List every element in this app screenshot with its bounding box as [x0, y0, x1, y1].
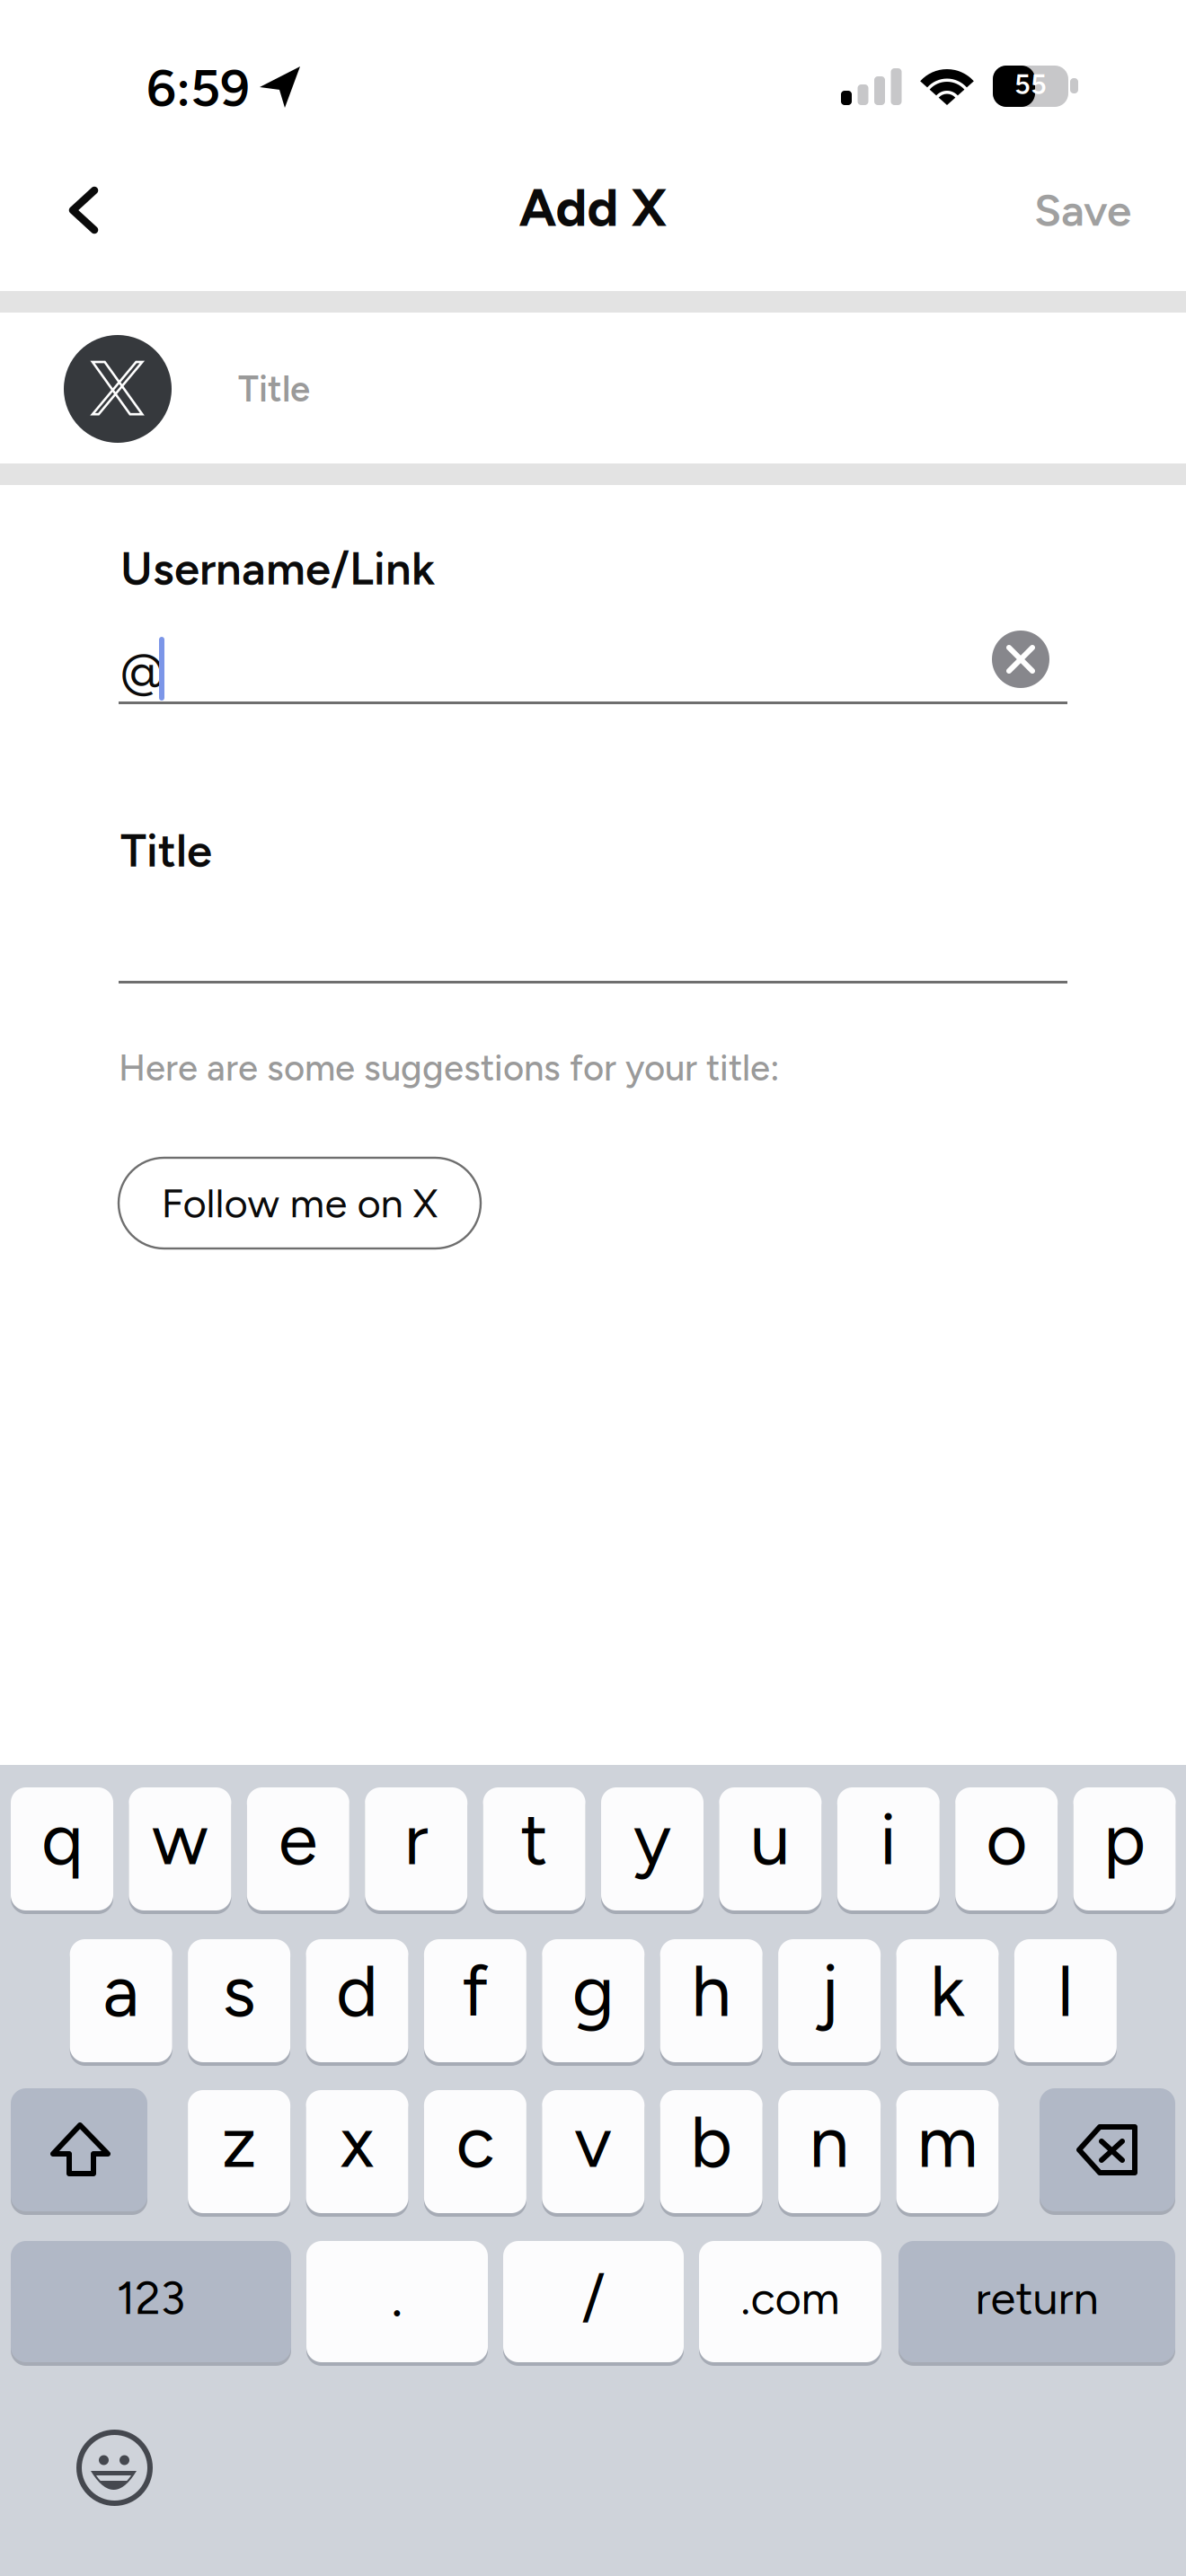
- button[interactable]: Delete: [1040, 2088, 1175, 2215]
- button[interactable]: m: [896, 2088, 999, 2215]
- button[interactable]: j: [778, 1937, 881, 2064]
- staticText: p: [1103, 1796, 1146, 1882]
- staticText: f: [462, 1948, 489, 2034]
- staticText: .com: [741, 2271, 840, 2325]
- staticText: Save: [1034, 184, 1131, 237]
- staticText: k: [930, 1948, 965, 2034]
- button[interactable]: .: [306, 2239, 488, 2364]
- staticText: w: [152, 1796, 208, 1882]
- staticText: e: [278, 1796, 318, 1882]
- button[interactable]: Shift: [11, 2088, 147, 2215]
- button[interactable]: e: [247, 1786, 349, 1912]
- staticText: 6:59: [146, 57, 250, 119]
- button[interactable]: y: [601, 1786, 704, 1912]
- button[interactable]: o: [955, 1786, 1058, 1912]
- staticText: h: [691, 1948, 732, 2034]
- button[interactable]: t: [483, 1786, 585, 1912]
- staticText: 55: [1014, 68, 1047, 101]
- staticText: return: [975, 2271, 1098, 2325]
- staticText: 123: [116, 2271, 186, 2325]
- staticText: Add X: [519, 176, 667, 239]
- button[interactable]: w: [129, 1786, 231, 1912]
- button[interactable]: a: [70, 1937, 172, 2064]
- staticText: r: [404, 1796, 428, 1882]
- staticText: .: [391, 2263, 403, 2329]
- staticText: Here are some suggestions for your title…: [119, 1046, 780, 1090]
- button[interactable]: k: [896, 1937, 999, 2064]
- button[interactable]: Back: [21, 156, 128, 264]
- button[interactable]: b: [660, 2088, 763, 2215]
- staticText: o: [986, 1796, 1027, 1882]
- staticText: c: [456, 2099, 495, 2185]
- button[interactable]: return: [898, 2239, 1175, 2364]
- button[interactable]: Title: [0, 313, 1186, 463]
- button[interactable]: l: [1014, 1937, 1117, 2064]
- staticText: b: [690, 2099, 732, 2185]
- button[interactable]: .com: [699, 2239, 881, 2364]
- button[interactable]: q: [11, 1786, 113, 1912]
- staticText: i: [880, 1796, 897, 1882]
- button[interactable]: 123: [11, 2239, 291, 2364]
- button[interactable]: Title: [119, 898, 1067, 984]
- staticText: Username/Link: [120, 541, 435, 596]
- button[interactable]: c: [424, 2088, 526, 2215]
- staticText: y: [633, 1796, 671, 1882]
- staticText: q: [41, 1796, 83, 1882]
- staticText: u: [750, 1796, 791, 1882]
- button[interactable]: v: [542, 2088, 644, 2215]
- button[interactable]: Save: [925, 161, 1131, 260]
- button[interactable]: s: [188, 1937, 290, 2064]
- staticText: Title: [120, 823, 212, 878]
- staticText: @: [120, 644, 165, 698]
- staticText: /: [582, 2260, 605, 2332]
- button[interactable]: i: [837, 1786, 940, 1912]
- button[interactable]: /: [503, 2239, 684, 2364]
- staticText: a: [103, 1948, 139, 2034]
- staticText: z: [222, 2099, 257, 2185]
- button[interactable]: n: [778, 2088, 881, 2215]
- button[interactable]: Emoji keyboard: [78, 2431, 168, 2521]
- button[interactable]: f: [424, 1937, 526, 2064]
- staticText: m: [917, 2099, 978, 2185]
- staticText: n: [809, 2099, 850, 2185]
- button[interactable]: x: [306, 2088, 408, 2215]
- staticText: v: [574, 2099, 612, 2185]
- staticText: s: [222, 1948, 256, 2034]
- button[interactable]: Username or link: [119, 631, 1067, 706]
- button[interactable]: Clear text: [992, 631, 1049, 688]
- staticText: j: [820, 1948, 839, 2034]
- button[interactable]: p: [1073, 1786, 1176, 1912]
- button[interactable]: h: [660, 1937, 763, 2064]
- staticText: t: [521, 1796, 548, 1882]
- button[interactable]: r: [365, 1786, 467, 1912]
- button[interactable]: u: [719, 1786, 822, 1912]
- button[interactable]: z: [188, 2088, 290, 2215]
- staticText: g: [572, 1948, 614, 2034]
- staticText: l: [1057, 1948, 1074, 2034]
- staticText: Title: [238, 367, 310, 410]
- button[interactable]: d: [306, 1937, 408, 2064]
- staticText: d: [336, 1948, 378, 2034]
- staticText: x: [340, 2099, 374, 2185]
- staticText: Follow me on X: [161, 1179, 438, 1228]
- button[interactable]: Follow me on X: [119, 1158, 481, 1248]
- button[interactable]: g: [542, 1937, 644, 2064]
